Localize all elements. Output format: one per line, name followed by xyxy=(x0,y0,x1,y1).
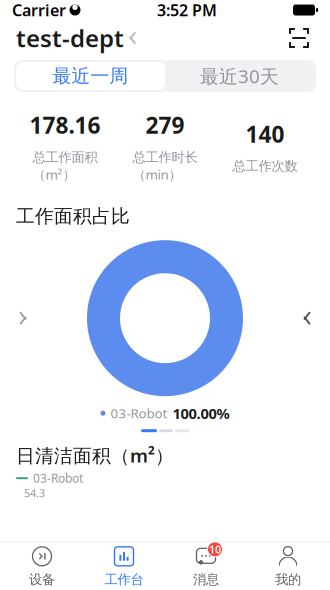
staticText: Carrier xyxy=(12,0,66,21)
staticText: 日清洁面积（m²） xyxy=(16,443,174,468)
staticText: 工作面积占比 xyxy=(16,205,130,228)
staticText: 最近一周 xyxy=(52,64,128,87)
staticText: 总工作时长（min） xyxy=(132,149,197,183)
staticText: 10 xyxy=(209,542,221,556)
button[interactable]: test-dept xyxy=(16,18,137,58)
staticText: 设备 xyxy=(29,571,55,588)
staticText: 100.00% xyxy=(172,403,229,423)
staticText: 我的 xyxy=(275,571,301,588)
staticText: 140 xyxy=(245,119,284,149)
button[interactable]: 我的 xyxy=(247,542,329,590)
staticText: 54.3 xyxy=(24,486,45,500)
button[interactable]: 设备 xyxy=(1,542,83,590)
button[interactable]: 工作台 xyxy=(83,542,165,590)
staticText: test-dept xyxy=(16,22,124,54)
button[interactable]: Next chart xyxy=(292,298,322,338)
staticText: 工作台 xyxy=(104,571,143,588)
button[interactable]: Scan code xyxy=(284,23,314,53)
button[interactable]: 最近一周 xyxy=(16,62,165,90)
staticText: 03-Robot xyxy=(33,470,83,486)
staticText: 总工作次数 xyxy=(232,158,297,174)
staticText: 03-Robot xyxy=(110,404,167,422)
button[interactable]: 10 xyxy=(165,542,247,590)
button[interactable]: 最近30天 xyxy=(165,62,314,90)
staticText: 3:52 PM xyxy=(157,0,217,21)
staticText: 消息 xyxy=(193,571,219,588)
staticText: 178.16 xyxy=(29,110,100,140)
button[interactable]: Previous chart xyxy=(8,298,38,338)
staticText: 总工作面积（m²） xyxy=(32,149,97,183)
staticText: 最近30天 xyxy=(200,64,279,88)
staticText: 279 xyxy=(145,110,184,140)
